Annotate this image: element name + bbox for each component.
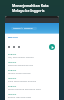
staticText: saya suka belajar bahasa [8, 79, 36, 82]
button[interactable]: Melayu [5, 59, 59, 67]
staticText: hai, apa khabar semua [8, 55, 34, 58]
staticText: MELAYU [8, 35, 18, 38]
staticText: Melayu ke Inggeris [12, 8, 45, 13]
staticText: selamat datang ke sini [8, 63, 34, 66]
staticText: Melayu [8, 60, 17, 63]
staticText: Melayu [8, 92, 17, 95]
staticText: Menerjemahkan Kata [12, 3, 49, 8]
button[interactable]: Play [49, 44, 55, 50]
button[interactable]: English [5, 67, 59, 75]
staticText: Melayu [8, 76, 17, 79]
button[interactable]: Melayu [5, 75, 59, 83]
button[interactable]: English [5, 51, 59, 59]
button[interactable]: Language selector [11, 27, 37, 30]
button[interactable]: English [5, 83, 59, 91]
staticText: English [8, 84, 17, 87]
staticText: terima kasih banyak [8, 71, 31, 74]
staticText: English [8, 68, 17, 71]
button[interactable]: Melayu [5, 91, 59, 99]
staticText: good morning everyone here [8, 87, 41, 90]
staticText: English [8, 52, 17, 55]
staticText: Melayu > Inggeris [13, 27, 33, 30]
staticText: jumpa lagi esok pagi [8, 95, 32, 98]
